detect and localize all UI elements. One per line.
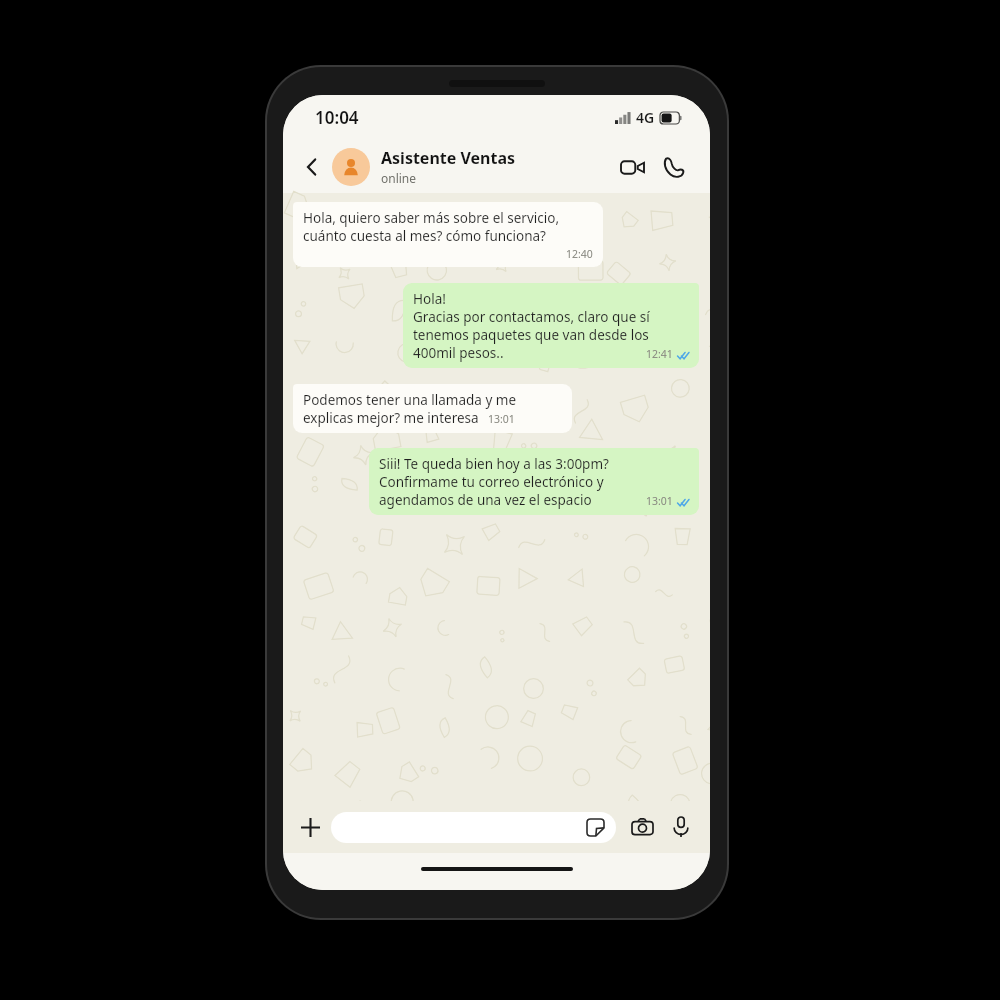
staticText: Gracias por contactamos, claro que sí: [413, 308, 650, 326]
staticText: 10:04: [315, 106, 359, 129]
button[interactable]: Back: [295, 150, 329, 184]
staticText: 12:41: [646, 347, 673, 361]
button[interactable]: Hola!: [403, 283, 699, 368]
staticText: Siii! Te queda bien hoy a las 3:00pm?: [379, 455, 609, 473]
staticText: agendamos de una vez el espacio: [379, 491, 592, 509]
button[interactable]: [331, 812, 616, 843]
staticText: Asistente Ventas: [381, 147, 516, 169]
button[interactable]: Voice message: [666, 812, 696, 842]
staticText: tenemos paquetes que van desde los: [413, 326, 649, 344]
staticText: 4G: [636, 108, 655, 127]
button[interactable]: Video call: [614, 149, 650, 185]
button[interactable]: Contact avatar: [332, 148, 370, 186]
staticText: 13:01: [488, 412, 515, 426]
button[interactable]: Siii! Te queda bien hoy a las 3:00pm?: [369, 448, 699, 515]
staticText: Hola, quiero saber más sobre el servicio…: [303, 209, 560, 227]
staticText: Podemos tener una llamada y me: [303, 391, 517, 409]
staticText: Hola!: [413, 290, 446, 308]
staticText: Confirmame tu correo electrónico y: [379, 473, 604, 491]
staticText: 12:40: [566, 247, 593, 261]
button[interactable]: Attach: [295, 812, 325, 842]
staticText: online: [381, 170, 417, 186]
staticText: 400mil pesos..: [413, 344, 504, 362]
button[interactable]: Camera: [627, 812, 657, 842]
button[interactable]: Voice call: [656, 149, 692, 185]
button[interactable]: Podemos tener una llamada y me: [293, 384, 572, 433]
staticText: cuánto cuesta al mes? cómo funciona?: [303, 227, 546, 245]
staticText: explicas mejor? me interesa: [303, 409, 479, 427]
staticText: 13:01: [646, 494, 673, 508]
button[interactable]: Hola, quiero saber más sobre el servicio…: [293, 202, 603, 267]
button[interactable]: Asistente Ventas: [381, 147, 614, 186]
